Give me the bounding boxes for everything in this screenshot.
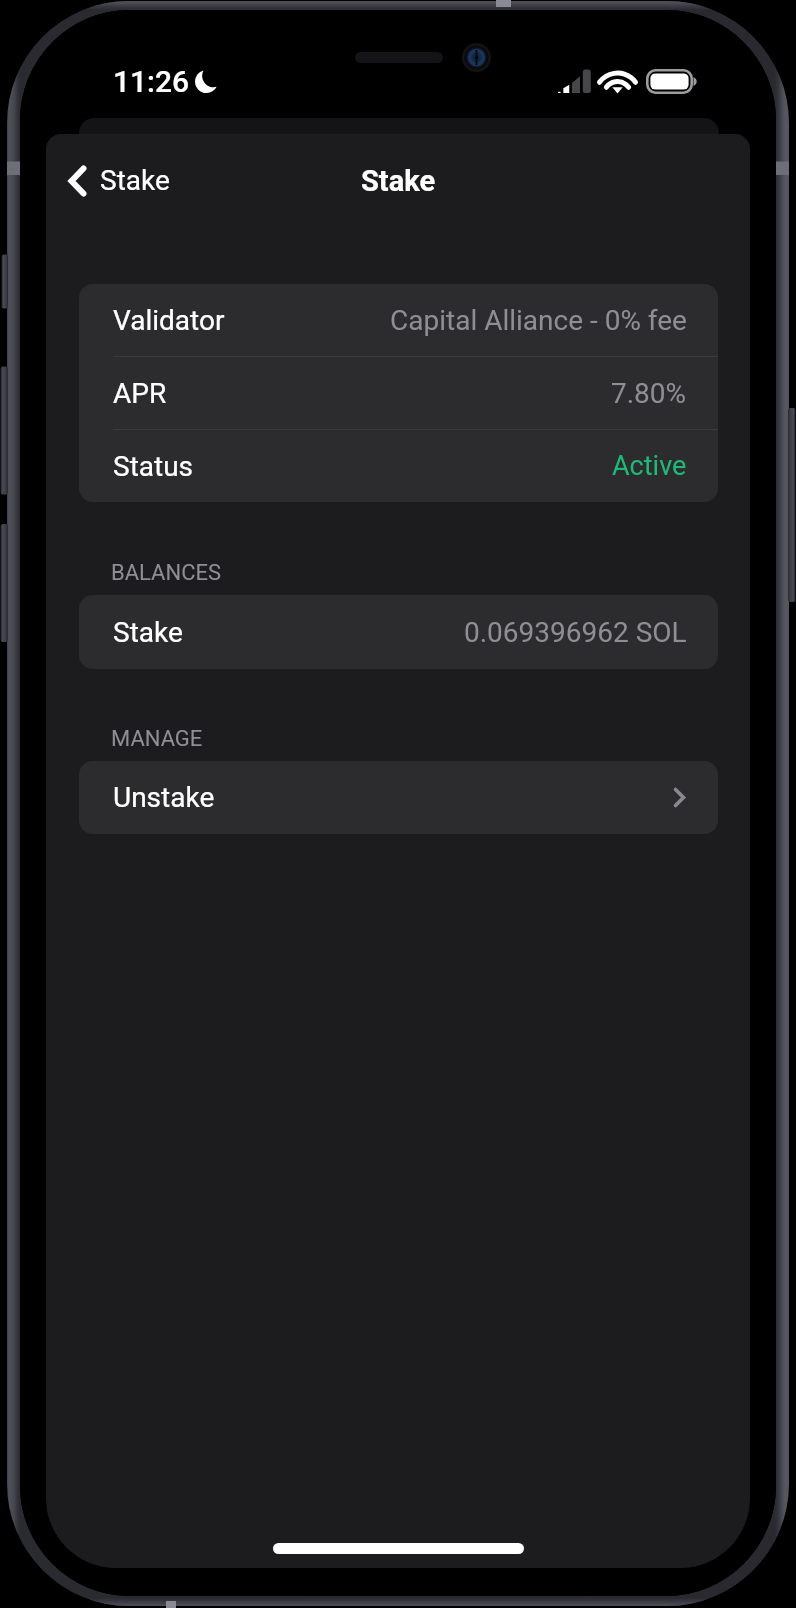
staticText: Stake	[113, 616, 183, 649]
staticText: Stake	[100, 164, 170, 197]
button[interactable]: Status	[79, 430, 718, 502]
staticText: 0.069396962 SOL	[464, 616, 687, 649]
staticText: Unstake	[113, 781, 215, 814]
button[interactable]: Back to Stake	[68, 164, 170, 197]
staticText: Capital Alliance - 0% fee	[390, 304, 687, 337]
button[interactable]: Stake	[79, 595, 718, 669]
staticText: 11:26	[113, 64, 190, 99]
staticText: Active	[612, 450, 687, 482]
staticText: APR	[113, 377, 167, 410]
staticText: BALANCES	[111, 560, 222, 586]
staticText: Stake	[361, 164, 436, 198]
button[interactable]: APR	[79, 357, 718, 430]
button[interactable]: Validator	[79, 284, 718, 357]
staticText: Validator	[113, 304, 225, 337]
staticText: 7.80%	[611, 377, 687, 410]
staticText: MANAGE	[111, 726, 203, 752]
button[interactable]: Unstake	[79, 761, 718, 834]
staticText: Status	[113, 450, 194, 483]
